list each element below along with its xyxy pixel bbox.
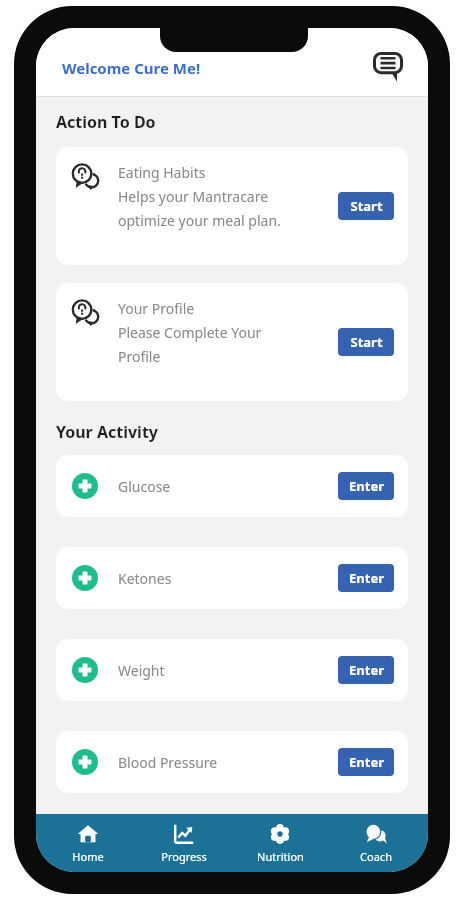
button[interactable]: Enter [338, 564, 394, 592]
button[interactable]: Nutrition [236, 814, 324, 872]
staticText: Eating Habits [118, 163, 206, 182]
button[interactable]: Ketones [56, 547, 408, 609]
staticText: Enter [349, 477, 384, 495]
button[interactable]: Your Profile [56, 283, 408, 401]
button[interactable]: Start [338, 192, 394, 220]
button[interactable]: Start [338, 328, 394, 356]
staticText: Enter [349, 569, 384, 587]
staticText: Welcome Cure Me! [62, 58, 201, 78]
staticText: Start [350, 333, 383, 351]
button[interactable]: Enter [338, 656, 394, 684]
staticText: Blood Pressure [118, 753, 218, 772]
staticText: Weight [118, 661, 165, 680]
staticText: Your Activity [56, 421, 158, 443]
button[interactable]: Weight [56, 639, 408, 701]
staticText: Ketones [118, 569, 172, 588]
staticText: Nutrition [257, 849, 304, 864]
button[interactable]: Enter [338, 472, 394, 500]
staticText: Glucose [118, 477, 171, 496]
staticText: Please Complete Your [118, 323, 262, 342]
button[interactable]: Messages [370, 49, 406, 85]
staticText: Helps your Mantracare [118, 187, 269, 206]
staticText: Start [350, 197, 383, 215]
button[interactable]: Blood Pressure [56, 731, 408, 793]
button[interactable]: Home [44, 814, 132, 872]
staticText: Progress [161, 849, 207, 864]
button[interactable]: Enter [338, 748, 394, 776]
button[interactable]: Eating Habits [56, 147, 408, 265]
staticText: Enter [349, 753, 384, 771]
button[interactable]: Glucose [56, 455, 408, 517]
button[interactable]: Coach [332, 814, 420, 872]
staticText: Home [72, 849, 104, 864]
staticText: Profile [118, 347, 161, 366]
staticText: Your Profile [118, 299, 195, 318]
staticText: Coach [360, 849, 392, 864]
button[interactable]: Progress [140, 814, 228, 872]
staticText: Action To Do [56, 111, 156, 133]
staticText: Enter [349, 661, 384, 679]
staticText: optimize your meal plan. [118, 211, 281, 230]
